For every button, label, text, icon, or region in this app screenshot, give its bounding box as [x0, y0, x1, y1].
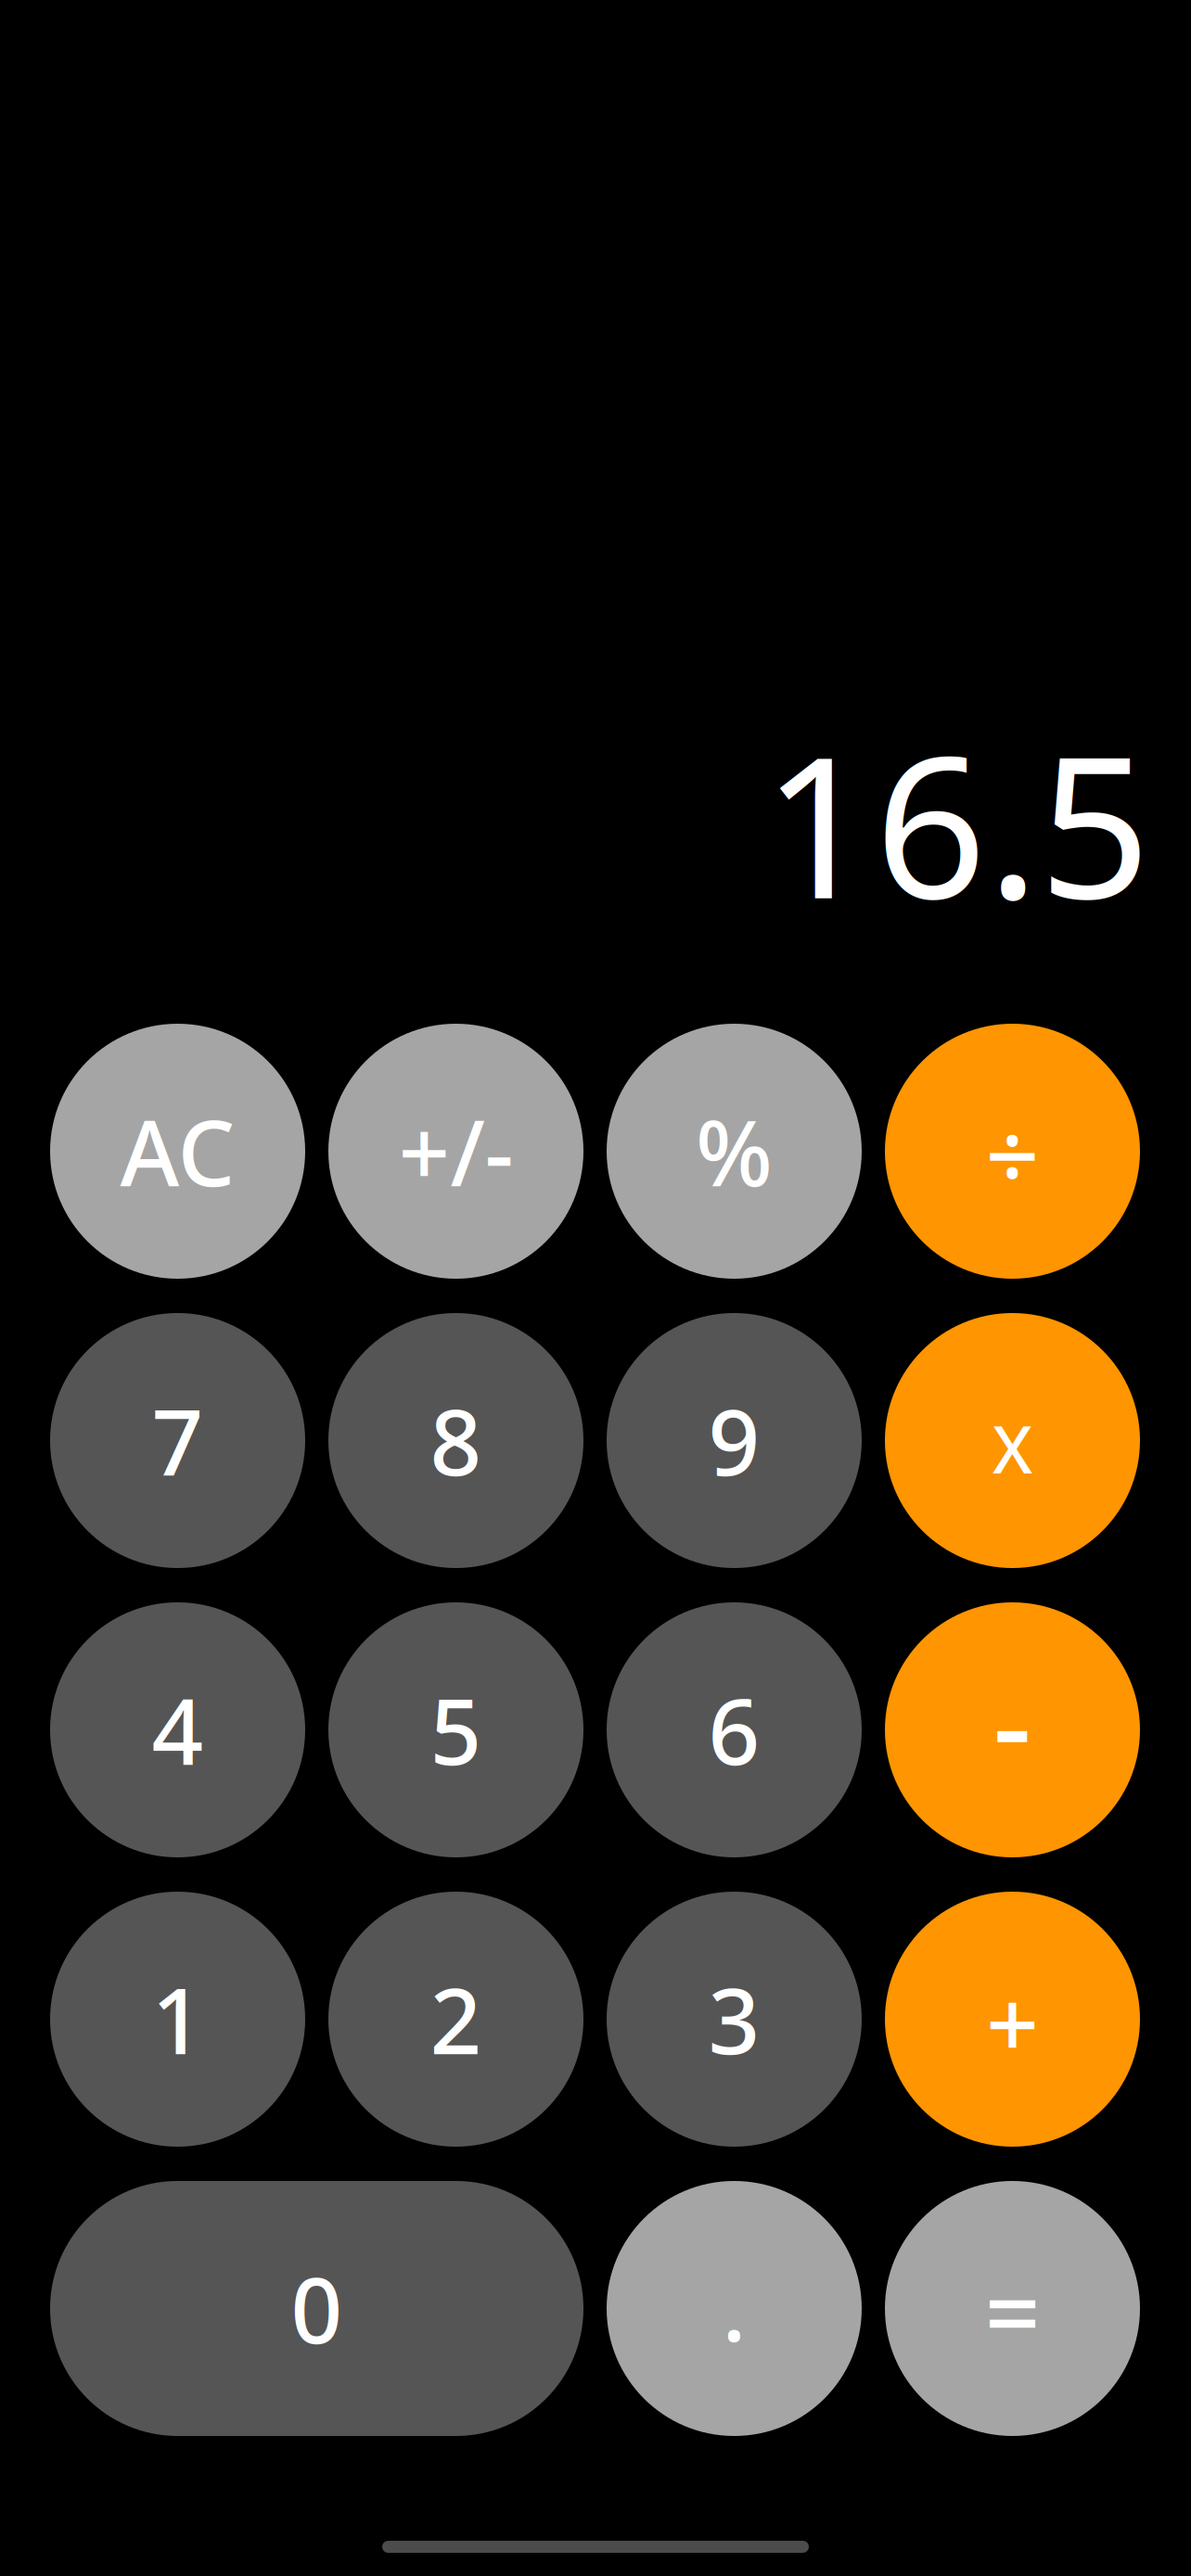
button[interactable]: Decimal point — [607, 2181, 862, 2436]
staticText: 3 — [708, 1959, 760, 2079]
staticText: 2 — [430, 1959, 482, 2079]
staticText: + — [986, 1960, 1039, 2084]
button[interactable]: Multiply — [885, 1313, 1140, 1568]
button[interactable]: 0 — [50, 2181, 583, 2436]
staticText: . — [722, 2249, 746, 2366]
staticText: 8 — [430, 1381, 482, 1501]
staticText: ÷ — [986, 1092, 1039, 1216]
staticText: 6 — [708, 1670, 760, 1790]
button[interactable]: Divide — [885, 1024, 1140, 1279]
button[interactable]: 2 — [328, 1892, 583, 2147]
staticText: = — [985, 2246, 1040, 2376]
staticText: 7 — [152, 1381, 204, 1501]
button[interactable]: 3 — [607, 1892, 862, 2147]
staticText: 0 — [291, 2249, 343, 2368]
button[interactable]: Add — [885, 1892, 1140, 2147]
staticText: 1 — [152, 1959, 204, 2079]
button[interactable]: Equals — [885, 2181, 1140, 2436]
button[interactable]: Subtract — [885, 1602, 1140, 1857]
button[interactable]: Toggle sign — [328, 1024, 583, 1279]
button[interactable]: 9 — [607, 1313, 862, 1568]
button[interactable]: 1 — [50, 1892, 305, 2147]
button[interactable]: 6 — [607, 1602, 862, 1857]
staticText: - — [993, 1643, 1032, 1802]
staticText: 9 — [708, 1381, 760, 1501]
staticText: +/- — [398, 1091, 513, 1211]
button[interactable]: Percent — [607, 1024, 862, 1279]
button[interactable]: 7 — [50, 1313, 305, 1568]
staticText: X — [992, 1404, 1032, 1491]
staticText: % — [696, 1091, 773, 1211]
staticText: 16.5 — [762, 693, 1151, 952]
button[interactable]: 5 — [328, 1602, 583, 1857]
staticText: 4 — [152, 1670, 204, 1790]
button[interactable]: 4 — [50, 1602, 305, 1857]
staticText: AC — [120, 1091, 235, 1211]
staticText: 5 — [430, 1670, 482, 1790]
button[interactable]: All clear — [50, 1024, 305, 1279]
button[interactable]: 8 — [328, 1313, 583, 1568]
